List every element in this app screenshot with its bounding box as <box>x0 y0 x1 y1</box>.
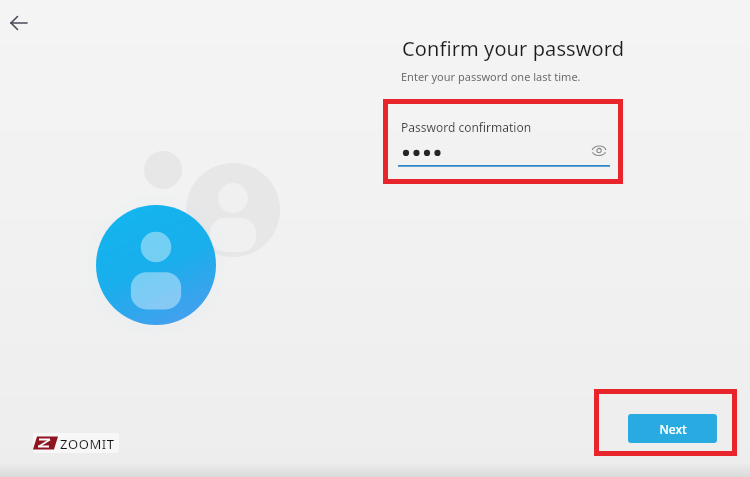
button[interactable]: Back <box>2 6 36 40</box>
staticText: Confirm your password <box>402 35 625 62</box>
button[interactable]: Next <box>628 414 717 443</box>
staticText: Enter your password one last time. <box>401 69 581 84</box>
button[interactable]: Show password <box>589 141 609 161</box>
button[interactable] <box>398 141 610 167</box>
staticText: Password confirmation <box>401 119 532 135</box>
staticText: Next <box>659 421 687 437</box>
staticText: ZOOMIT <box>60 435 115 453</box>
